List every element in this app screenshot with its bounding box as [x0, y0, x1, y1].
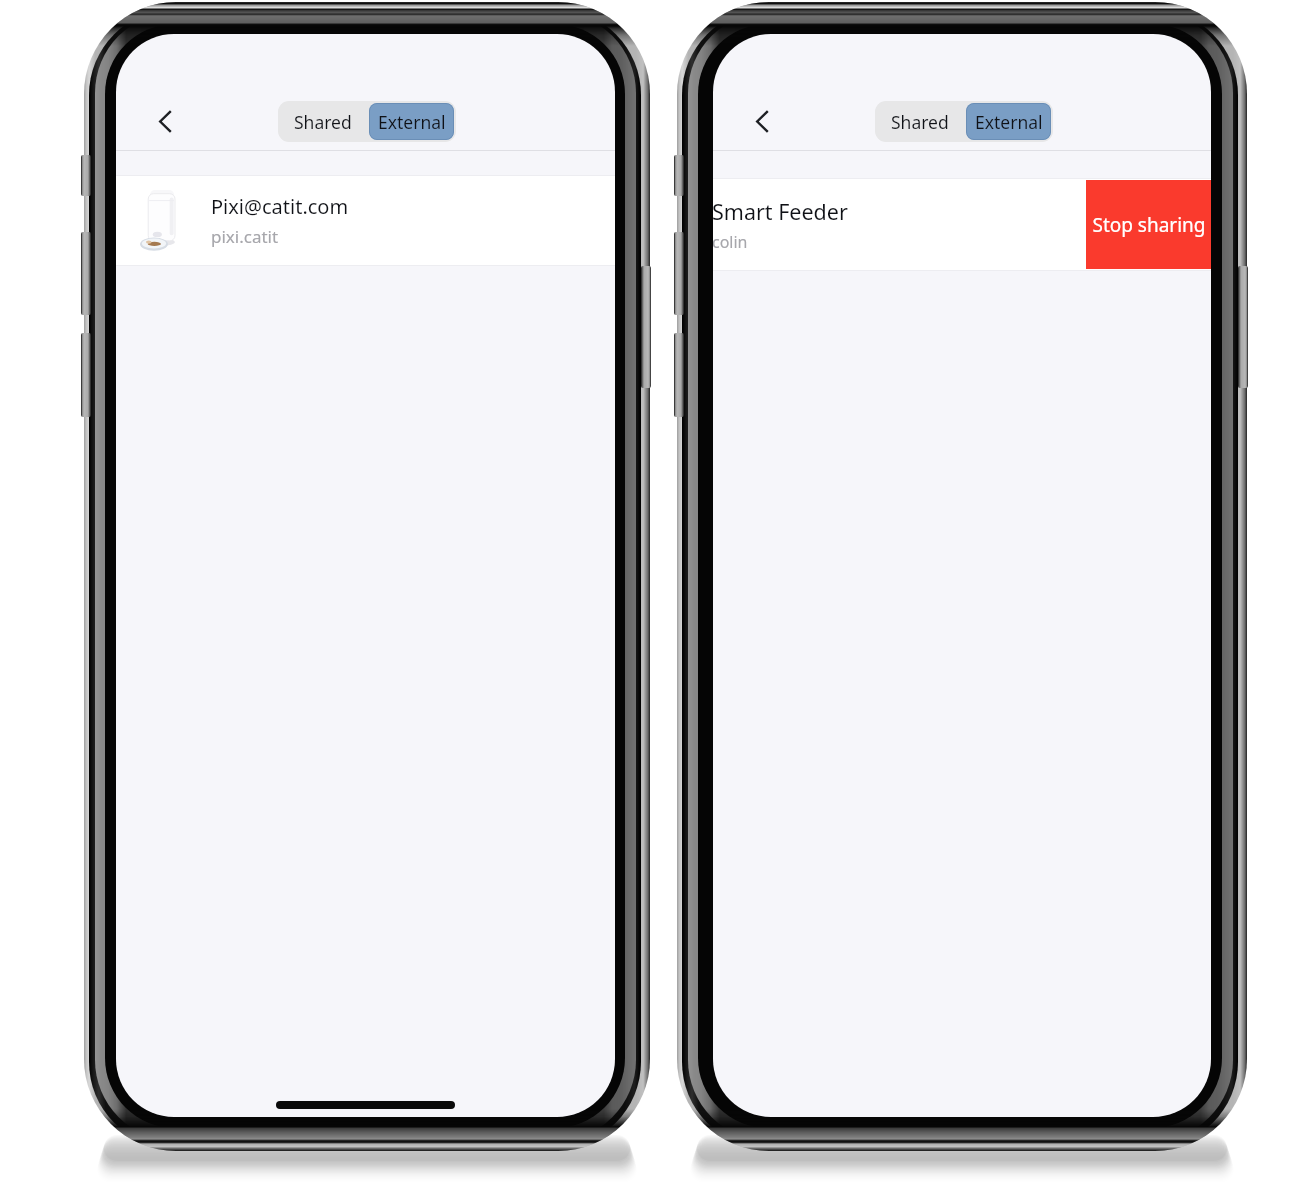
staticText: Pixi@catit.com	[211, 193, 349, 220]
button[interactable]: Back	[144, 100, 186, 142]
staticText: colin	[713, 231, 748, 253]
button[interactable]: Pixi@catit.com	[116, 176, 615, 265]
button[interactable]: Smart Feeder	[713, 179, 1115, 270]
staticText: pixi.catit	[211, 225, 279, 248]
staticText: Stop sharing	[1092, 212, 1206, 238]
staticText: Smart Feeder	[713, 197, 848, 226]
button[interactable]: Back	[741, 100, 783, 142]
button[interactable]: Shared	[875, 101, 965, 142]
staticText: Shared	[294, 110, 352, 134]
staticText: Shared	[891, 110, 949, 134]
button[interactable]: External	[369, 103, 454, 140]
staticText: External	[975, 110, 1043, 134]
button[interactable]: Shared	[278, 101, 368, 142]
button[interactable]: External	[966, 103, 1051, 140]
staticText: External	[378, 110, 446, 134]
button[interactable]: Stop sharing	[1086, 180, 1211, 269]
